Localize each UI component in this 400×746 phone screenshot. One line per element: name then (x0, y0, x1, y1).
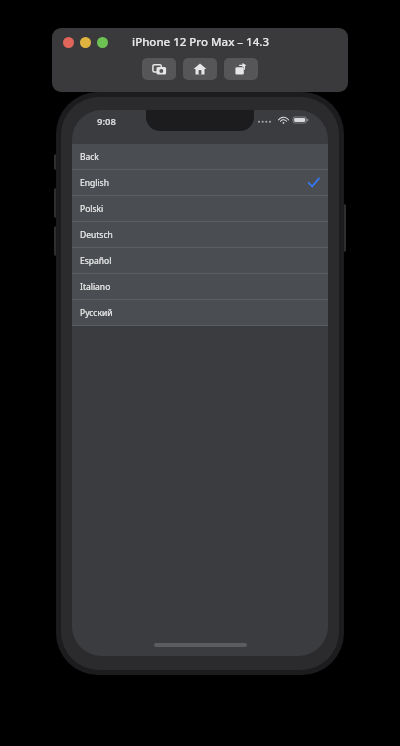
button[interactable]: Close (63, 37, 74, 48)
staticText: 9:08 (97, 115, 116, 128)
staticText: Español (80, 255, 112, 267)
button[interactable]: Deutsch (72, 222, 328, 247)
staticText: Русский (80, 307, 113, 319)
staticText: English (80, 177, 109, 189)
button[interactable]: Rotate (224, 58, 258, 80)
button[interactable]: Back (72, 144, 328, 169)
button[interactable]: Home (183, 58, 217, 80)
staticText: Back (80, 151, 99, 163)
button[interactable]: Русский (72, 300, 328, 325)
staticText: iPhone 12 Pro Max – 14.3 (132, 34, 269, 50)
staticText: Deutsch (80, 229, 113, 241)
staticText: Italiano (80, 281, 111, 293)
staticText: Polski (80, 203, 104, 215)
button[interactable]: Español (72, 248, 328, 273)
button[interactable]: English (72, 170, 328, 195)
button[interactable]: Zoom (97, 37, 108, 48)
button[interactable]: Polski (72, 196, 328, 221)
button[interactable]: Italiano (72, 274, 328, 299)
button[interactable]: Screenshot (142, 58, 176, 80)
button[interactable]: Minimize (80, 37, 91, 48)
